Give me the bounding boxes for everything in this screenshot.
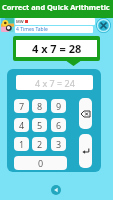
staticText: 3 [56, 138, 62, 150]
button[interactable]: 4 Times Table [15, 26, 93, 33]
staticText: 9 [56, 100, 62, 112]
button[interactable]: 9 [51, 99, 66, 113]
staticText: 6 [56, 119, 62, 131]
staticText: 5 [37, 119, 43, 131]
staticText: 4 x 7 = 24 [35, 77, 75, 89]
button[interactable]: Back [51, 185, 61, 195]
button[interactable]: Backspace [79, 98, 92, 129]
staticText: 7 [19, 100, 25, 112]
staticText: 4 x 7 = 28 [32, 41, 82, 56]
button[interactable]: App icon [1, 18, 14, 32]
staticText: 8 [37, 100, 43, 112]
button[interactable]: Multiplication [96, 18, 111, 33]
button[interactable]: 7 [14, 99, 29, 113]
staticText: MW [16, 19, 24, 24]
staticText: 4 [19, 119, 25, 131]
button[interactable]: 6 [51, 118, 66, 132]
staticText: 4 Times Table [16, 26, 48, 33]
button[interactable]: 4 [14, 118, 29, 132]
button[interactable]: 2 [32, 137, 47, 151]
staticText: 0 [38, 157, 44, 169]
button[interactable]: 0 [14, 156, 67, 170]
button[interactable]: 3 [51, 137, 66, 151]
button[interactable]: Enter [79, 134, 92, 168]
button[interactable]: MW [15, 18, 95, 25]
button[interactable]: 5 [32, 118, 47, 132]
button[interactable]: 1 [14, 137, 29, 151]
staticText: 2 [37, 138, 43, 150]
staticText: 1 [19, 138, 25, 150]
button[interactable]: 8 [32, 99, 47, 113]
staticText: Correct and Quick Arithmetic [2, 2, 110, 12]
